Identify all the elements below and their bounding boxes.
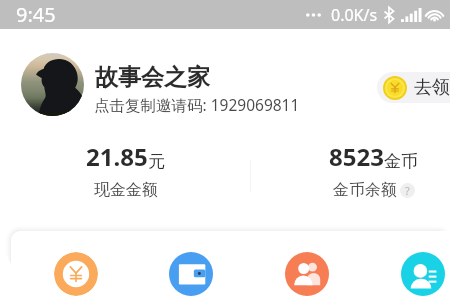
staticText: ?	[405, 183, 410, 198]
button[interactable]: Help	[400, 183, 415, 198]
button[interactable]: Wallet	[169, 252, 213, 296]
button[interactable]: Profile	[401, 252, 445, 296]
staticText: 8523	[329, 140, 384, 173]
staticText: 9:45	[16, 1, 56, 28]
staticText: 去领钱	[414, 76, 450, 99]
button[interactable]: 去领钱	[377, 72, 450, 103]
staticText: 0.0K/s	[331, 4, 378, 26]
button[interactable]: 点击复制邀请码: 1929069811	[94, 94, 300, 115]
button[interactable]: Cash	[54, 252, 98, 296]
button[interactable]: Avatar	[21, 53, 84, 116]
staticText: 现金金额	[94, 180, 158, 200]
staticText: 21.85	[86, 140, 148, 173]
staticText: 金币余额	[333, 180, 397, 200]
staticText: 金币	[384, 151, 418, 172]
staticText: 元	[148, 151, 165, 172]
button[interactable]: Friends	[285, 252, 329, 296]
staticText: 故事会之家	[95, 63, 210, 92]
